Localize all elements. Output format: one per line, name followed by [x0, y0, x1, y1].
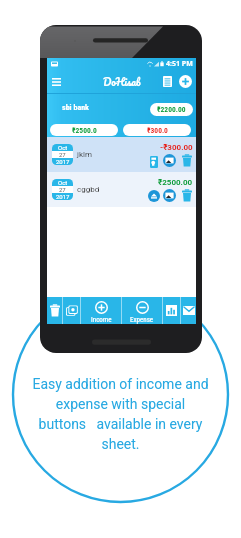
staticText: Expense: [130, 316, 154, 324]
button[interactable]: Oct: [47, 172, 196, 207]
staticText: DoHisab: [103, 73, 141, 91]
button[interactable]: ₹300.0: [123, 124, 191, 136]
staticText: 2017: [56, 158, 70, 165]
button[interactable]: Add sheet: [176, 71, 195, 92]
staticText: Oct: [58, 144, 68, 151]
staticText: sbi bank: [62, 103, 89, 112]
staticText: ₹300.0: [147, 126, 168, 135]
staticText: cggbd: [77, 185, 100, 194]
button[interactable]: Income: [81, 297, 121, 324]
button[interactable]: Mail: [181, 297, 196, 324]
button[interactable]: Delete: [179, 188, 194, 203]
button[interactable]: Photo: [162, 153, 177, 168]
staticText: ₹2200.00: [157, 105, 186, 114]
staticText: Income: [91, 316, 112, 324]
button[interactable]: Expense: [122, 297, 162, 324]
button[interactable]: Menu: [50, 72, 63, 91]
staticText: 2017: [56, 193, 70, 200]
staticText: -₹300.00: [160, 143, 193, 152]
staticText: ₹2500.0: [72, 126, 97, 135]
staticText: 27: [59, 186, 66, 193]
button[interactable]: Money: [63, 297, 80, 324]
staticText: jklm: [77, 150, 92, 159]
staticText: 4:51 PM: [166, 59, 193, 69]
staticText: Easy addition of income and expense with…: [32, 376, 209, 452]
button[interactable]: Photo: [162, 188, 177, 203]
button[interactable]: ₹2200.00: [150, 103, 193, 116]
button[interactable]: Notes: [159, 71, 176, 92]
button[interactable]: Oct: [47, 137, 196, 172]
staticText: ₹2500.00: [158, 178, 193, 187]
button[interactable]: Delete: [47, 297, 62, 324]
button[interactable]: Upload: [147, 189, 161, 203]
staticText: Oct: [58, 179, 68, 186]
button[interactable]: Save: [147, 154, 161, 168]
button[interactable]: Delete: [179, 153, 194, 168]
button[interactable]: ₹2500.0: [50, 124, 118, 136]
button[interactable]: Chart: [163, 297, 180, 324]
staticText: 27: [59, 151, 66, 158]
